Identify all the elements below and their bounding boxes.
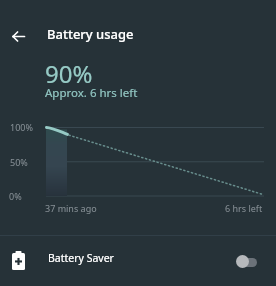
staticText: Battery Saver: [48, 251, 114, 265]
button[interactable]: Battery Saver, off: [222, 248, 262, 274]
staticText: 90%: [45, 57, 93, 90]
staticText: 100%: [10, 121, 33, 133]
button[interactable]: Battery Saver: [0, 236, 276, 286]
staticText: Approx. 6 hrs left: [45, 85, 138, 101]
staticText: 50%: [10, 156, 28, 168]
staticText: Battery usage: [47, 25, 134, 43]
staticText: 6 hrs left: [225, 202, 263, 214]
staticText: 0%: [9, 190, 22, 202]
staticText: 37 mins ago: [45, 202, 97, 214]
button[interactable]: Back: [5, 23, 31, 49]
